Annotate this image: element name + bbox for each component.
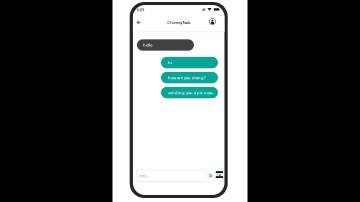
staticText: hi (168, 60, 172, 65)
button[interactable]: Back (136, 20, 140, 25)
staticText: hello (143, 42, 152, 48)
staticText: hello... (139, 173, 150, 178)
staticText: ChimeyTask (167, 20, 190, 25)
staticText: sending you a pic now... (168, 90, 215, 95)
button[interactable]: Attach photo (216, 171, 223, 178)
button[interactable]: Send (208, 173, 213, 177)
staticText: how are you doing? (168, 75, 206, 80)
staticText: 6:03 (137, 7, 144, 12)
button[interactable]: Account (209, 18, 216, 25)
